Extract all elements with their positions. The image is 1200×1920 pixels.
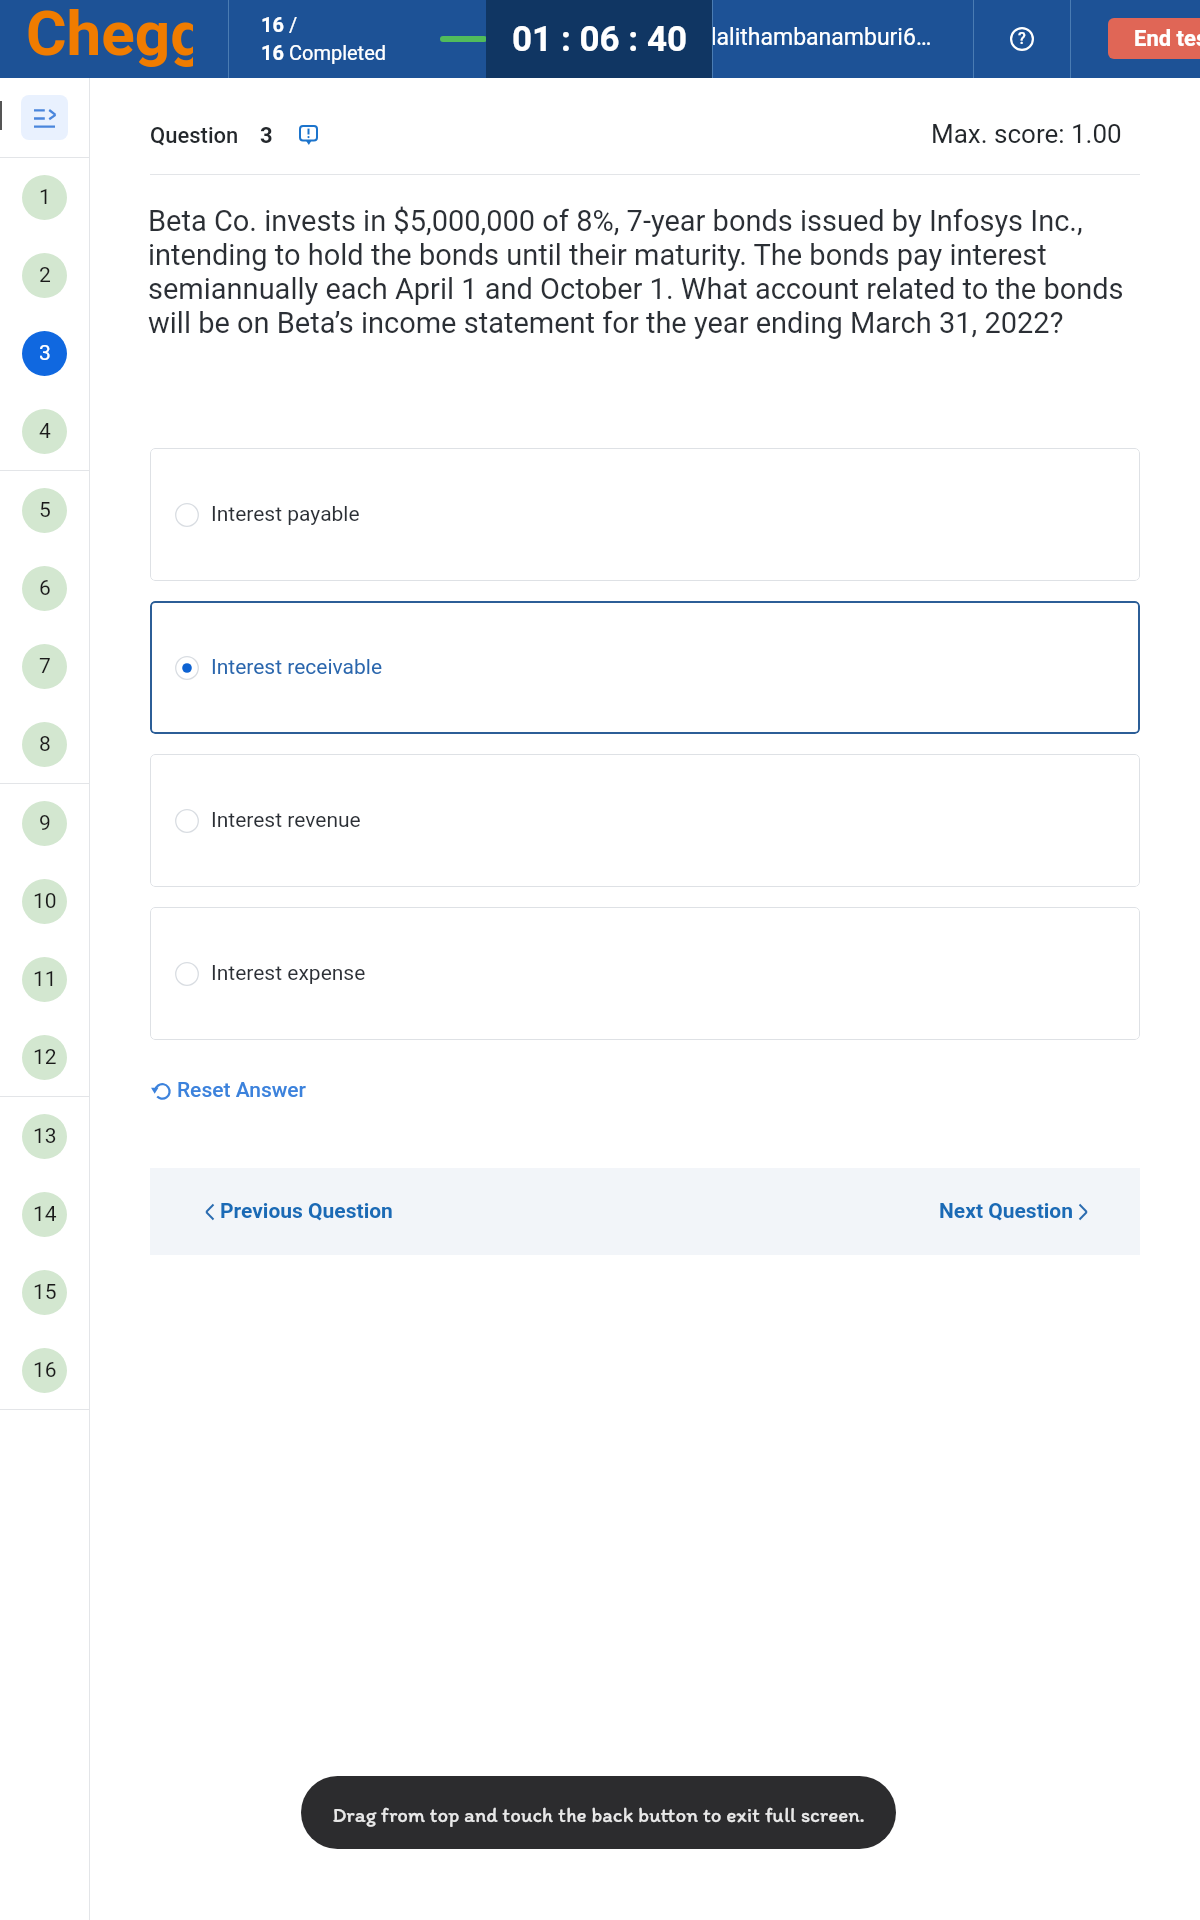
staticText: 2 bbox=[39, 263, 51, 288]
staticText: Previous Question bbox=[220, 1199, 393, 1224]
button[interactable]: Interest receivable bbox=[150, 601, 1140, 734]
staticText: Interest revenue bbox=[211, 808, 361, 833]
staticText: Interest expense bbox=[211, 961, 366, 986]
button[interactable]: Interest expense bbox=[150, 907, 1140, 1040]
button[interactable]: 4 bbox=[0, 392, 89, 470]
button[interactable]: 13 bbox=[0, 1097, 89, 1175]
button[interactable]: Help bbox=[974, 0, 1070, 78]
button[interactable]: Previous Question bbox=[205, 1168, 393, 1255]
button[interactable]: End test bbox=[1108, 18, 1200, 59]
staticText: Reset Answer bbox=[177, 1078, 306, 1103]
staticText: 3 bbox=[260, 123, 273, 149]
button[interactable]: 10 bbox=[0, 862, 89, 940]
button[interactable]: Reset Answer bbox=[150, 1078, 306, 1103]
staticText: Interest payable bbox=[211, 502, 360, 527]
staticText: Chegg bbox=[26, 0, 193, 70]
staticText: / bbox=[284, 13, 298, 36]
button[interactable]: 6 bbox=[0, 549, 89, 627]
button[interactable]: 11 bbox=[0, 940, 89, 1018]
staticText: Question bbox=[150, 123, 239, 149]
button[interactable]: Next Question bbox=[939, 1168, 1088, 1255]
button[interactable]: Report issue bbox=[299, 125, 318, 146]
staticText: 16 bbox=[261, 13, 284, 36]
button[interactable]: 12 bbox=[0, 1018, 89, 1096]
staticText: 3 bbox=[39, 341, 51, 366]
button[interactable]: Toggle question list bbox=[21, 95, 68, 140]
button[interactable]: 9 bbox=[0, 784, 89, 862]
staticText: End test bbox=[1134, 26, 1200, 52]
staticText: Completed bbox=[284, 41, 387, 64]
staticText: 16 bbox=[261, 41, 284, 64]
button[interactable]: 5 bbox=[0, 471, 89, 549]
staticText: 13 bbox=[33, 1124, 57, 1149]
button[interactable]: 3 bbox=[0, 314, 89, 392]
staticText: 15 bbox=[33, 1280, 57, 1305]
button[interactable]: Interest payable bbox=[150, 448, 1140, 581]
staticText: 01 : 06 : 40 bbox=[512, 19, 688, 60]
staticText: 7 bbox=[39, 654, 51, 679]
staticText: 10 bbox=[33, 889, 57, 914]
staticText: 4 bbox=[39, 419, 51, 444]
staticText: ? bbox=[1018, 29, 1026, 48]
staticText: lalithambanamburi63366... bbox=[711, 24, 937, 51]
staticText: 11 bbox=[33, 967, 57, 992]
staticText: 1 bbox=[39, 185, 51, 210]
staticText: 9 bbox=[39, 811, 51, 836]
button[interactable]: 14 bbox=[0, 1175, 89, 1253]
button[interactable]: 1 bbox=[0, 158, 89, 236]
button[interactable]: 15 bbox=[0, 1253, 89, 1331]
staticText: Beta Co. invests in $5,000,000 of 8%, 7-… bbox=[148, 204, 1142, 340]
staticText: 8 bbox=[39, 732, 51, 757]
staticText: 12 bbox=[33, 1045, 57, 1070]
button[interactable]: 7 bbox=[0, 627, 89, 705]
button[interactable]: Interest revenue bbox=[150, 754, 1140, 887]
staticText: Next Question bbox=[939, 1199, 1073, 1224]
staticText: Interest receivable bbox=[211, 655, 383, 680]
staticText: 6 bbox=[39, 576, 51, 601]
button[interactable]: 2 bbox=[0, 236, 89, 314]
button[interactable]: 16 bbox=[0, 1331, 89, 1409]
button[interactable]: 8 bbox=[0, 705, 89, 783]
staticText: Drag from top and touch the back button … bbox=[332, 1802, 865, 1827]
staticText: 16 bbox=[33, 1358, 57, 1383]
staticText: Max. score: 1.00 bbox=[931, 119, 1122, 149]
staticText: 5 bbox=[39, 498, 51, 523]
staticText: 14 bbox=[33, 1202, 57, 1227]
